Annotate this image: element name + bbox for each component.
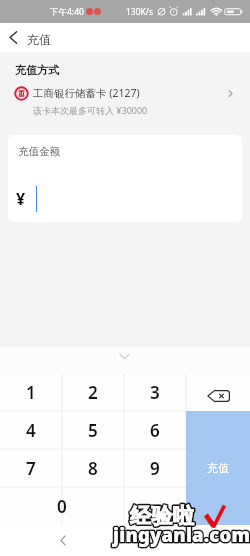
button[interactable]: 充值	[186, 411, 250, 525]
button[interactable]: 3	[124, 373, 186, 411]
staticText: 2	[88, 381, 98, 404]
staticText: 4	[26, 419, 36, 442]
staticText: 该卡本次最多可转入 ¥30000	[33, 104, 148, 116]
button[interactable]: Backspace	[186, 373, 250, 411]
staticText: 充值	[207, 461, 229, 475]
staticText: 充值金额	[18, 145, 60, 158]
staticText: 130K/s	[126, 6, 154, 18]
button[interactable]: 9	[124, 449, 186, 487]
staticText: 3	[150, 381, 160, 404]
staticText: 6	[150, 419, 160, 442]
button[interactable]: Back	[52, 525, 74, 556]
staticText: 经验啦	[130, 503, 195, 529]
button[interactable]: Back	[0, 23, 27, 52]
staticText: 充值	[27, 32, 51, 47]
staticText: 0	[57, 495, 67, 518]
button[interactable]: 7	[0, 449, 62, 487]
button[interactable]: 工商银行储蓄卡 (2127)	[0, 82, 250, 104]
button[interactable]: 2	[62, 373, 124, 411]
button[interactable]: 1	[0, 373, 62, 411]
staticText: 工商银行储蓄卡 (2127)	[33, 86, 140, 100]
staticText: 9	[150, 457, 160, 480]
staticText: 5	[88, 419, 98, 442]
staticText: 充值方式	[15, 63, 59, 77]
button[interactable]: 6	[124, 411, 186, 449]
staticText: ¥	[16, 188, 26, 210]
staticText: 7	[26, 457, 36, 480]
button[interactable]	[124, 487, 186, 525]
staticText: jingyanla.com	[113, 522, 250, 547]
staticText: jingyanla.com	[113, 522, 250, 547]
button[interactable]: 5	[62, 411, 124, 449]
staticText: 经验啦	[130, 503, 195, 529]
button[interactable]: 4	[0, 411, 62, 449]
button[interactable]: 0	[0, 487, 124, 525]
staticText: 下午4:40	[50, 6, 84, 18]
button[interactable]: 8	[62, 449, 124, 487]
staticText: 1	[26, 381, 36, 404]
staticText: 8	[88, 457, 98, 480]
